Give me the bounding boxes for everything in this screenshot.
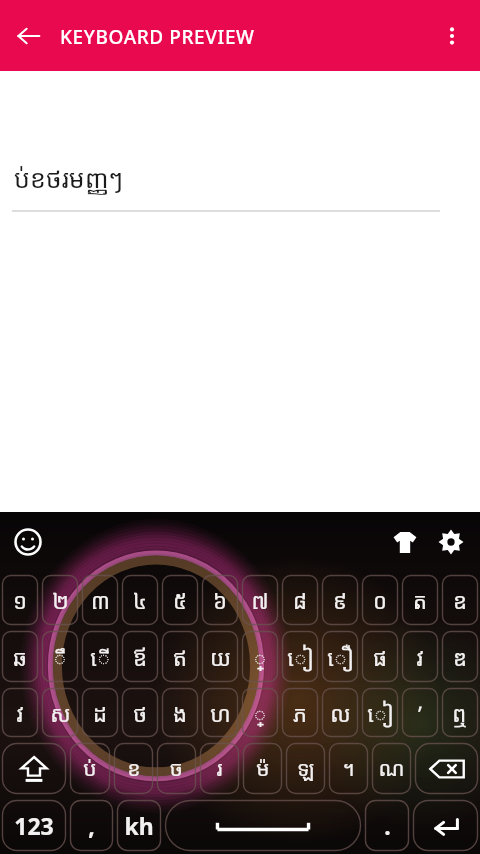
staticText: ប់ xyxy=(83,754,97,783)
button[interactable]: ប់ xyxy=(69,742,111,795)
staticText: យ xyxy=(210,642,231,672)
button[interactable]: More options xyxy=(430,14,474,58)
button[interactable]: ៥ xyxy=(161,574,199,626)
button[interactable]: Settings xyxy=(430,521,472,563)
button[interactable]: ល xyxy=(321,687,359,738)
button[interactable]: ។ xyxy=(328,742,369,795)
button[interactable]: ១ xyxy=(1,574,39,626)
staticText: ើ xyxy=(90,642,111,672)
button[interactable]: ឮ xyxy=(441,687,479,738)
button[interactable]: , xyxy=(69,799,114,852)
button[interactable]: ភ xyxy=(281,687,319,738)
staticText: kh xyxy=(124,810,154,841)
button[interactable]: ឹ xyxy=(41,630,79,683)
button[interactable]: . xyxy=(364,799,410,852)
staticText: ឆ xyxy=(13,642,27,672)
button[interactable]: Emoji xyxy=(6,520,50,564)
staticText: ឿ xyxy=(327,642,354,672)
staticText: ឮ xyxy=(452,698,468,728)
button[interactable]: Theme xyxy=(384,521,426,563)
button[interactable]: ម៉ xyxy=(242,742,283,795)
button[interactable]: ʼ xyxy=(401,687,439,738)
staticText: ង xyxy=(173,698,187,728)
staticText: ខ xyxy=(127,754,141,783)
staticText: ្ xyxy=(253,698,267,728)
button[interactable]: ៤ xyxy=(121,574,159,626)
staticText: ៣ xyxy=(91,585,110,615)
staticText: ឹ xyxy=(53,642,67,672)
button[interactable]: ឌ xyxy=(441,630,479,683)
button[interactable]: ៩ xyxy=(321,574,359,626)
button[interactable]: ហ xyxy=(201,687,239,738)
staticText: . xyxy=(384,810,391,841)
button[interactable]: ឿ xyxy=(321,630,359,683)
button[interactable]: ្ xyxy=(241,630,279,683)
button[interactable]: ថ xyxy=(121,687,159,738)
button[interactable]: ឆ xyxy=(1,630,39,683)
staticText: ណ xyxy=(378,754,405,783)
button[interactable] xyxy=(164,799,362,852)
staticText: ្ xyxy=(253,642,267,672)
button[interactable]: ឥ xyxy=(161,630,199,683)
button[interactable]: ឧ xyxy=(441,574,479,626)
staticText: ៀ xyxy=(367,698,394,728)
button[interactable]: ៧ xyxy=(241,574,279,626)
staticText: ១ xyxy=(13,585,27,615)
staticText: ឪ xyxy=(133,642,147,672)
button[interactable]: ណ xyxy=(371,742,412,795)
button[interactable]: ឡ xyxy=(285,742,326,795)
staticText: ឥ xyxy=(173,642,187,672)
staticText: ភ xyxy=(293,698,307,728)
staticText: ស xyxy=(50,698,71,728)
staticText: ហ xyxy=(210,698,231,728)
button[interactable]: ឪ xyxy=(121,630,159,683)
staticText: ឧ xyxy=(453,585,467,615)
button[interactable]: វ xyxy=(401,630,439,683)
staticText: , xyxy=(88,810,95,841)
button[interactable]: ខ xyxy=(113,742,154,795)
staticText: ដ xyxy=(93,698,107,728)
staticText: KEYBOARD PREVIEW xyxy=(60,24,255,50)
button[interactable]: រ xyxy=(199,742,240,795)
staticText: ច xyxy=(170,754,183,783)
button[interactable]: ង xyxy=(161,687,199,738)
staticText: 123 xyxy=(14,810,54,841)
button[interactable]: ៨ xyxy=(281,574,319,626)
staticText: ៥ xyxy=(173,585,187,615)
button[interactable]: វ xyxy=(1,687,39,738)
button[interactable]: យ xyxy=(201,630,239,683)
button[interactable]: kh xyxy=(116,799,162,852)
staticText: ʼ xyxy=(418,698,422,728)
button[interactable] xyxy=(412,799,479,852)
staticText: ៦ xyxy=(213,585,227,615)
staticText: ប់ខថរមញ្ញៗ xyxy=(14,161,124,195)
button[interactable]: ្ xyxy=(241,687,279,738)
button[interactable]: ០ xyxy=(361,574,399,626)
button[interactable]: Back xyxy=(8,15,50,57)
button[interactable]: ច xyxy=(156,742,197,795)
button[interactable]: 123 xyxy=(1,799,67,852)
button[interactable]: ើ xyxy=(81,630,119,683)
button[interactable]: ២ xyxy=(41,574,79,626)
staticText: ០ xyxy=(373,585,387,615)
button[interactable]: ៀ xyxy=(281,630,319,683)
button[interactable] xyxy=(414,742,479,795)
staticText: ៤ xyxy=(133,585,147,615)
button[interactable]: ៀ xyxy=(361,687,399,738)
button[interactable]: ផ xyxy=(361,630,399,683)
button[interactable] xyxy=(1,742,67,795)
button[interactable]: ស xyxy=(41,687,79,738)
staticText: ៧ xyxy=(251,585,269,615)
button[interactable]: ៣ xyxy=(81,574,119,626)
button[interactable]: ដ xyxy=(81,687,119,738)
button[interactable]: ៦ xyxy=(201,574,239,626)
staticText: ល xyxy=(330,698,351,728)
staticText: ផ xyxy=(373,642,387,672)
button[interactable]: ត xyxy=(401,574,439,626)
staticText: ម៉ xyxy=(256,754,270,783)
staticText: ៩ xyxy=(333,585,347,615)
staticText: ២ xyxy=(52,585,69,615)
staticText: វ xyxy=(416,642,424,672)
staticText: ៨ xyxy=(293,585,307,615)
staticText: ៀ xyxy=(287,642,314,672)
